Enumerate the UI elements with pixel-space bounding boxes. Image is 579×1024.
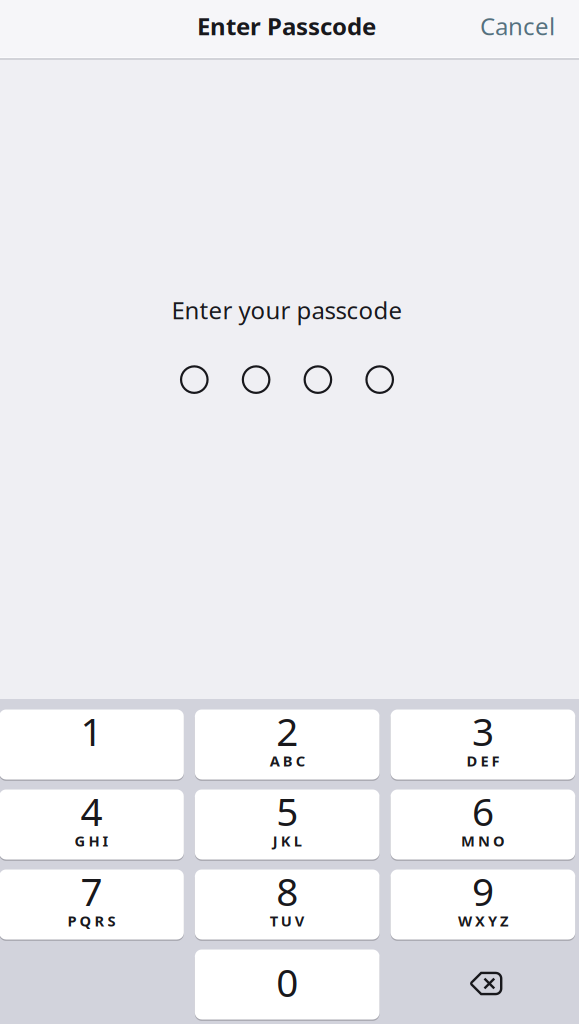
staticText: 0 <box>276 956 298 1008</box>
staticText: Cancel <box>480 10 555 42</box>
staticText: GHI <box>74 831 108 851</box>
staticText: ABC <box>270 751 305 771</box>
button[interactable]: 1 <box>0 709 184 779</box>
staticText: 3 <box>472 705 494 757</box>
button[interactable]: 9 <box>391 869 575 939</box>
button[interactable]: 5 <box>195 789 380 859</box>
button[interactable]: 8 <box>195 869 380 939</box>
button[interactable]: 3 <box>391 709 575 779</box>
staticText: 8 <box>276 865 298 917</box>
staticText: JKL <box>273 831 302 851</box>
button[interactable]: 4 <box>0 789 184 859</box>
button[interactable]: 7 <box>0 869 184 939</box>
staticText: 9 <box>472 865 494 917</box>
staticText: Enter Passcode <box>197 10 376 42</box>
button[interactable]: Delete <box>391 949 575 1019</box>
staticText: 1 <box>80 705 102 757</box>
button[interactable]: 0 <box>195 949 380 1019</box>
staticText: WXYZ <box>458 911 508 931</box>
button[interactable]: 6 <box>391 789 575 859</box>
staticText: 6 <box>472 785 494 837</box>
staticText: MNO <box>461 831 505 851</box>
staticText: DEF <box>466 751 499 771</box>
staticText: TUV <box>270 911 305 931</box>
staticText: 4 <box>80 785 102 837</box>
staticText: PQRS <box>67 911 115 931</box>
staticText: 5 <box>276 785 298 837</box>
staticText: 7 <box>80 865 102 917</box>
staticText: 2 <box>276 705 298 757</box>
button[interactable]: 2 <box>195 709 380 779</box>
staticText: Enter your passcode <box>171 294 402 326</box>
button[interactable]: Cancel <box>468 1 567 56</box>
